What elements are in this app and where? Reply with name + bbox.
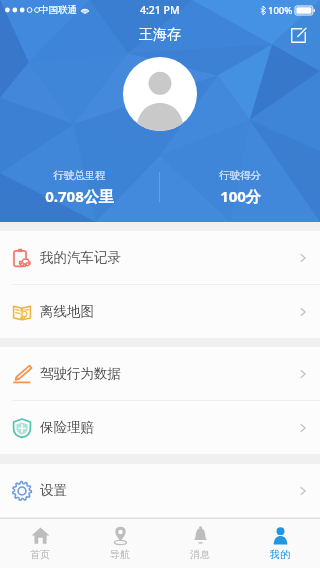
staticText: 行驶总里程 (53, 169, 106, 182)
button[interactable]: 我的汽车记录 (0, 231, 320, 284)
staticText: 设置 (40, 482, 67, 499)
staticText: 我的汽车记录 (40, 249, 121, 266)
button[interactable]: Edit profile (284, 21, 312, 49)
button[interactable]: 导航 (80, 519, 160, 568)
staticText: 驾驶行为数据 (40, 365, 121, 382)
staticText: 中国联通 (39, 4, 77, 16)
button[interactable]: Profile photo (123, 57, 197, 131)
staticText: 0.708公里 (45, 186, 114, 206)
staticText: 首页 (30, 548, 50, 561)
staticText: 4:21 PM (140, 3, 180, 17)
button[interactable]: 设置 (0, 464, 320, 517)
button[interactable]: 首页 (0, 519, 80, 568)
staticText: 我的 (270, 548, 290, 561)
button[interactable]: 我的 (240, 519, 320, 568)
staticText: 王海存 (139, 26, 181, 44)
button[interactable]: 消息 (160, 519, 240, 568)
button[interactable]: 驾驶行为数据 (0, 347, 320, 400)
staticText: 导航 (110, 548, 130, 561)
staticText: 100分 (220, 186, 261, 206)
staticText: 行驶得分 (219, 169, 261, 182)
button[interactable]: 离线地图 (0, 285, 320, 338)
staticText: 100% (268, 4, 293, 17)
staticText: 消息 (190, 548, 210, 561)
button[interactable]: 保险理赔 (0, 401, 320, 454)
staticText: 离线地图 (40, 303, 94, 320)
staticText: 保险理赔 (40, 419, 94, 436)
